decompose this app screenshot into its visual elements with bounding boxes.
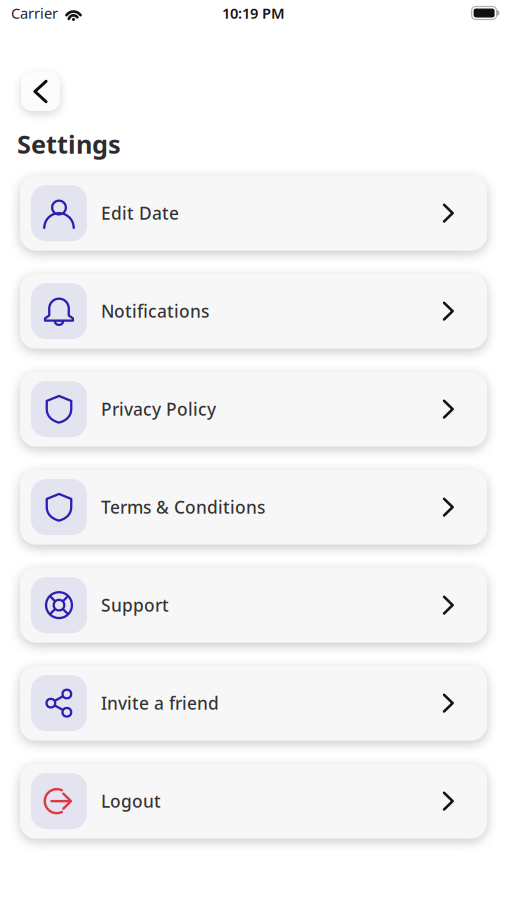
- staticText: Invite a friend: [101, 692, 219, 715]
- button[interactable]: Back: [21, 72, 60, 111]
- button[interactable]: Terms & Conditions: [20, 470, 487, 545]
- button[interactable]: Invite a friend: [20, 666, 487, 741]
- staticText: Settings: [17, 127, 121, 161]
- staticText: Terms & Conditions: [101, 496, 265, 519]
- button[interactable]: Notifications: [20, 274, 487, 349]
- staticText: Edit Date: [101, 202, 179, 225]
- button[interactable]: Logout: [20, 764, 487, 839]
- button[interactable]: Privacy Policy: [20, 372, 487, 447]
- staticText: 10:19 PM: [222, 3, 285, 23]
- button[interactable]: Support: [20, 568, 487, 643]
- staticText: Carrier: [11, 3, 58, 23]
- button[interactable]: Edit Date: [20, 176, 487, 251]
- staticText: Notifications: [101, 300, 209, 323]
- staticText: Logout: [101, 790, 161, 813]
- staticText: Privacy Policy: [101, 398, 216, 421]
- staticText: Support: [101, 594, 169, 617]
